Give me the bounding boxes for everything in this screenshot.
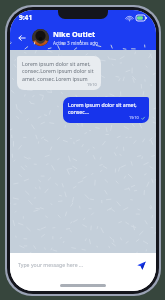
staticText: 19:10 (87, 82, 97, 87)
staticText: Nike Outlet (53, 29, 96, 39)
button[interactable]: Lorem ipsum dolor sit amet, consec... (63, 97, 149, 123)
staticText: Active 3 minutes ago (53, 40, 98, 46)
staticText: Lorem ipsum dolor sit amet, consec.Lorem… (22, 60, 97, 82)
button[interactable]: Type your message here ... (18, 253, 134, 276)
staticText: Type your message here ... (18, 261, 84, 268)
button[interactable]: Profile photo (32, 29, 49, 46)
button[interactable]: Back (15, 31, 29, 45)
staticText: Lorem ipsum dolor sit amet, consec... (68, 101, 145, 115)
button[interactable]: Send (134, 258, 148, 272)
button[interactable]: Lorem ipsum dolor sit amet, consec.Lorem… (17, 56, 101, 90)
staticText: 19:10 (129, 115, 139, 120)
staticText: 9:41 (19, 13, 33, 22)
